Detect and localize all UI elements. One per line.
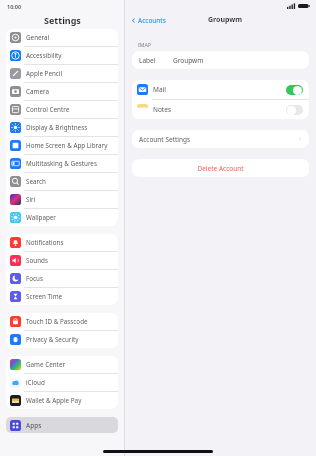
staticText: Notifications — [26, 238, 64, 247]
staticText: Privacy & Security — [26, 335, 79, 344]
staticText: Accounts — [138, 16, 166, 25]
staticText: 10:00 — [7, 3, 22, 10]
button[interactable]: iCloud — [6, 374, 118, 391]
button[interactable]: Privacy & Security — [6, 331, 118, 348]
button[interactable]: Search — [6, 173, 118, 190]
button[interactable]: Accessibility — [6, 47, 118, 64]
staticText: Account Settings — [139, 135, 298, 144]
button[interactable]: Wallet & Apple Pay — [6, 392, 118, 409]
staticText: Home Screen & App Library — [26, 141, 108, 150]
staticText: Sounds — [26, 256, 48, 265]
button[interactable]: Notes — [132, 100, 309, 119]
staticText: General — [26, 33, 50, 42]
staticText: Wallpaper — [26, 213, 56, 222]
staticText: Notes — [153, 105, 286, 114]
staticText: Delete Account — [197, 164, 244, 173]
button[interactable]: Mail — [132, 80, 309, 99]
button[interactable]: Accounts — [131, 16, 166, 25]
staticText: Multitasking & Gestures — [26, 159, 97, 168]
staticText: Groupwm — [173, 56, 204, 65]
staticText: Siri — [26, 195, 36, 204]
staticText: iCloud — [26, 378, 45, 387]
staticText: Groupwm — [208, 15, 243, 25]
button[interactable]: Sounds — [6, 252, 118, 269]
button[interactable]: Control Centre — [6, 101, 118, 118]
staticText: Display & Brightness — [26, 123, 88, 132]
staticText: Settings — [44, 14, 81, 26]
staticText: Camera — [26, 87, 49, 96]
button[interactable]: Account Settings — [132, 130, 309, 148]
staticText: Focus — [26, 274, 44, 283]
button[interactable]: Siri — [6, 191, 118, 208]
staticText: Touch ID & Passcode — [26, 317, 88, 326]
button[interactable]: Apple Pencil — [6, 65, 118, 82]
button[interactable]: Touch ID & Passcode — [6, 313, 118, 330]
button[interactable]: Game Center — [6, 356, 118, 373]
button[interactable]: Screen Time — [6, 288, 118, 305]
staticText: Label — [139, 56, 156, 65]
button[interactable]: Multitasking & Gestures — [6, 155, 118, 172]
button[interactable]: Delete Account — [132, 159, 309, 177]
staticText: Apple Pencil — [26, 69, 63, 78]
staticText: Game Center — [26, 360, 66, 369]
staticText: Mail — [153, 85, 286, 94]
button[interactable]: Notifications — [6, 234, 118, 251]
button[interactable]: Camera — [6, 83, 118, 100]
button[interactable]: General — [6, 29, 118, 46]
staticText: Apps — [26, 421, 42, 430]
staticText: Accessibility — [26, 51, 62, 60]
button[interactable]: Label — [132, 51, 309, 69]
staticText: Search — [26, 177, 46, 186]
button[interactable]: Focus — [6, 270, 118, 287]
button[interactable]: Wallpaper — [6, 209, 118, 226]
button[interactable]: Display & Brightness — [6, 119, 118, 136]
staticText: IMAP — [138, 41, 151, 48]
staticText: Control Centre — [26, 105, 70, 114]
staticText: Wallet & Apple Pay — [26, 396, 82, 405]
button[interactable]: Apps — [6, 417, 118, 433]
button[interactable]: Mail on — [286, 85, 303, 95]
button[interactable]: Home Screen & App Library — [6, 137, 118, 154]
button[interactable]: Notes off — [286, 105, 303, 115]
staticText: Screen Time — [26, 292, 63, 301]
